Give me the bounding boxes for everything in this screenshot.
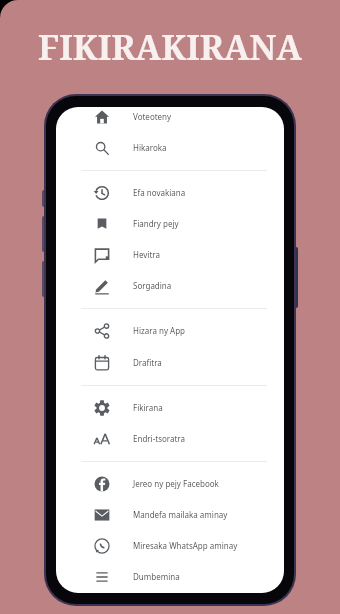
staticText: Endri-tsoratra (133, 433, 185, 444)
staticText: Miresaka WhatsApp aminay (133, 540, 238, 551)
staticText: Fiandry pejy (133, 218, 179, 229)
staticText: FIKIRAKIRANA (38, 24, 302, 70)
button[interactable]: Hevitra (56, 239, 284, 270)
staticText: Efa novakiana (133, 187, 186, 198)
staticText: Fikirana (133, 402, 163, 413)
staticText: Hikaroka (133, 142, 167, 153)
button[interactable]: Endri-tsoratra (56, 423, 284, 454)
staticText: Hevitra (133, 249, 160, 260)
button[interactable]: Dumbemina (56, 561, 284, 592)
staticText: Hizara ny App (133, 325, 186, 336)
staticText: Mandefa mailaka aminay (133, 509, 228, 520)
button[interactable]: Sorgadina (56, 270, 284, 301)
button[interactable]: Jereo ny pejy Facebook (56, 468, 284, 499)
button[interactable]: Efa novakiana (56, 177, 284, 208)
button[interactable]: Drafitra (56, 347, 284, 378)
button[interactable]: Hikaroka (56, 132, 284, 163)
staticText: Sorgadina (133, 280, 172, 291)
staticText: Jereo ny pejy Facebook (133, 478, 219, 489)
staticText: Dumbemina (133, 571, 180, 582)
staticText: Drafitra (133, 357, 162, 368)
button[interactable]: Voteoteny (56, 107, 284, 132)
button[interactable]: Hizara ny App (56, 315, 284, 346)
button[interactable]: Fiandry pejy (56, 208, 284, 239)
button[interactable]: Fikirana (56, 392, 284, 423)
staticText: Voteoteny (133, 111, 172, 122)
button[interactable]: Miresaka WhatsApp aminay (56, 530, 284, 561)
button[interactable]: Mandefa mailaka aminay (56, 499, 284, 530)
